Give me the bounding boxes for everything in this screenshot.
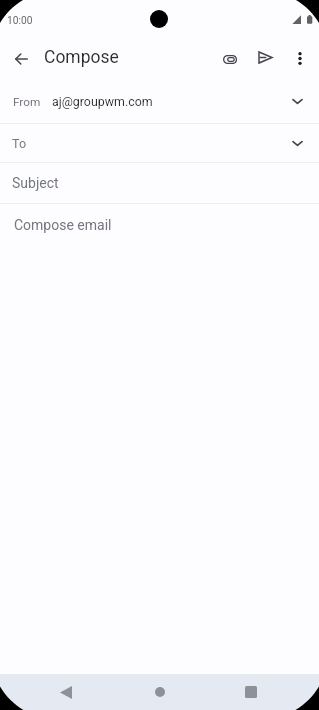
staticText: 10:00	[7, 15, 33, 27]
staticText: To	[12, 136, 27, 151]
button[interactable]: Compose email	[0, 204, 319, 246]
button[interactable]: Send	[249, 41, 282, 74]
button[interactable]: To	[0, 124, 319, 162]
staticText: aj@groupwm.com	[52, 94, 153, 109]
button[interactable]: Navigate up	[6, 44, 36, 74]
button[interactable]: Recent apps	[231, 674, 271, 710]
button[interactable]: Home	[140, 674, 180, 710]
staticText: Subject	[12, 175, 59, 191]
staticText: Compose	[44, 47, 119, 68]
button[interactable]: More options	[284, 43, 315, 74]
button[interactable]: Subject	[0, 163, 319, 203]
staticText: From	[13, 95, 41, 109]
button[interactable]: Back	[46, 674, 86, 710]
button[interactable]: Attach file	[214, 43, 247, 76]
staticText: Compose email	[14, 217, 112, 233]
button[interactable]: From	[0, 80, 319, 123]
